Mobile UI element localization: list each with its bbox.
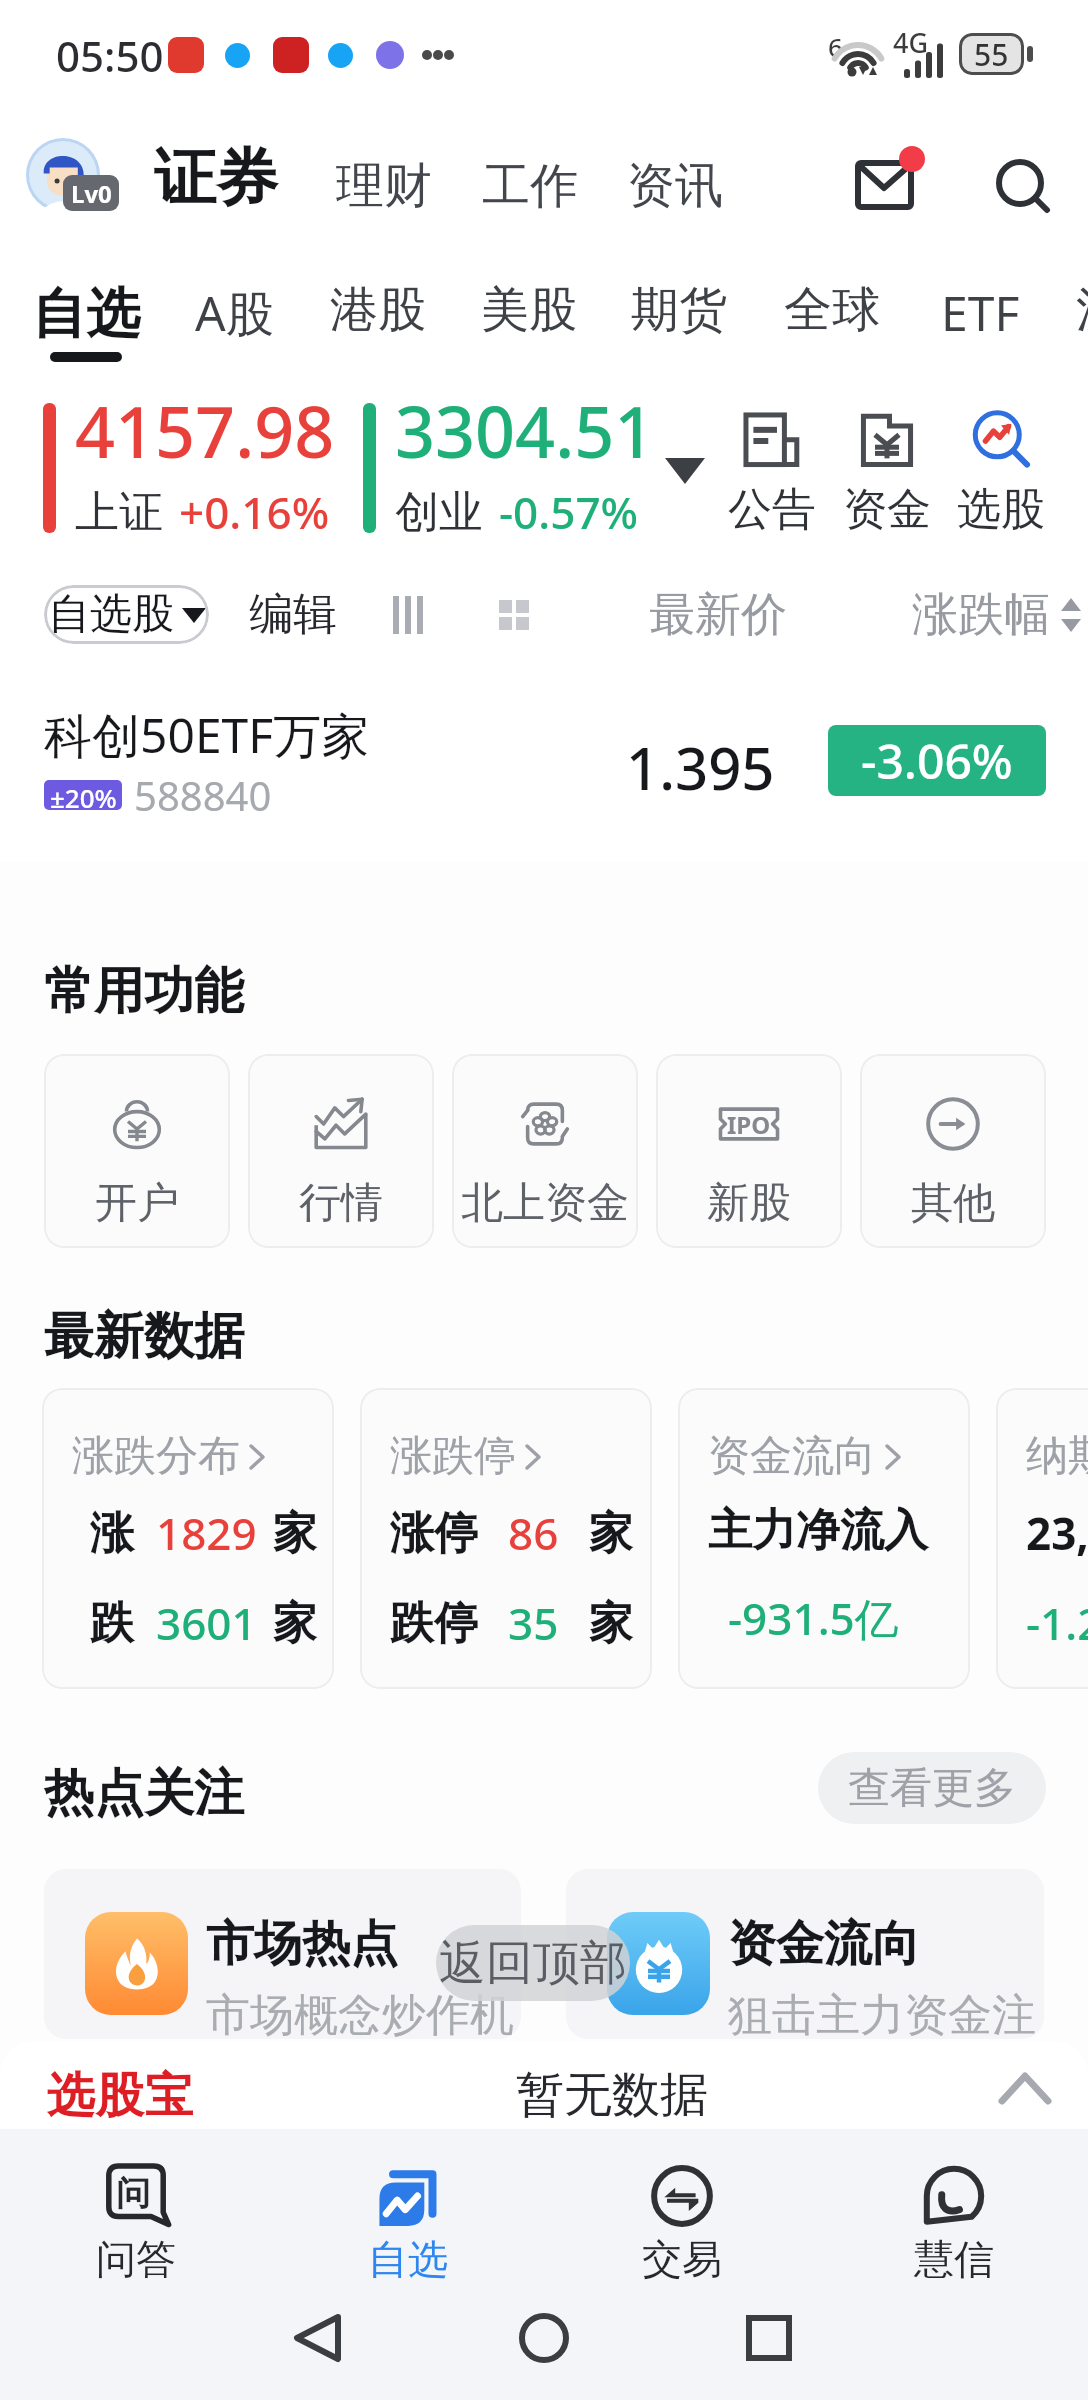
staticText: 23,4 (1026, 1503, 1088, 1563)
button[interactable]: 行情 (248, 1054, 434, 1248)
staticText: -3.06% (861, 728, 1013, 793)
button[interactable]: 港股 (308, 280, 448, 340)
button[interactable]: 返回 (262, 2282, 374, 2394)
button[interactable]: 资讯 (627, 156, 723, 216)
staticText: 跌停 (390, 1596, 478, 1651)
staticText: 创业 (395, 485, 483, 540)
button[interactable]: 全球 (762, 280, 902, 340)
staticText: 常用功能 (44, 960, 244, 1023)
staticText: 开户 (95, 1177, 179, 1230)
staticText: 家 (273, 1506, 317, 1561)
button[interactable]: 问 (46, 2150, 226, 2290)
button[interactable]: 资金流向 (566, 1869, 1044, 2039)
staticText: 最新数据 (44, 1305, 244, 1368)
staticText: 查看更多 (848, 1762, 1016, 1815)
staticText: 6 (828, 29, 843, 64)
staticText: 4157.98 (75, 383, 335, 478)
button[interactable]: 工作 (482, 156, 578, 216)
staticText: 慧信 (914, 2234, 994, 2284)
staticText: 自选股 (48, 588, 174, 641)
button[interactable]: 自选股 (44, 585, 209, 644)
staticText: 编辑 (249, 587, 337, 642)
staticText: 涨停 (390, 1506, 478, 1561)
staticText: 港股 (330, 280, 426, 340)
button[interactable]: 其他 (860, 1054, 1046, 1248)
staticText: 涨跌停 (390, 1430, 516, 1483)
button[interactable]: 自选 (318, 2150, 498, 2290)
staticText: 自选 (32, 280, 140, 348)
button[interactable]: 涨跌幅 (912, 585, 1081, 644)
button[interactable]: A股 (164, 280, 304, 346)
button[interactable]: 涨跌分布 (42, 1388, 334, 1689)
staticText: -0.57% (499, 482, 639, 542)
button[interactable]: 沪 (1030, 280, 1088, 340)
staticText: 狙击主力资金注入 (728, 1988, 1044, 2039)
button[interactable]: IPO (656, 1054, 842, 1248)
button[interactable]: ETF (910, 280, 1050, 345)
staticText: 返回顶部 (439, 1934, 627, 1993)
staticText: 北上资金 (461, 1177, 629, 1230)
button[interactable]: 搜索 (978, 136, 1068, 226)
staticText: 问答 (96, 2234, 176, 2284)
button[interactable]: 网格视图 (476, 585, 552, 644)
staticText: -931.5亿 (728, 1588, 899, 1648)
staticText: 涨跌分布 (72, 1430, 240, 1483)
button[interactable]: 编辑 (243, 585, 343, 644)
staticText: 资金流向 (708, 1430, 876, 1483)
button[interactable]: 涨跌停 (360, 1388, 652, 1689)
staticText: 工作 (482, 156, 578, 216)
button[interactable] (0, 690, 1088, 835)
button[interactable]: 交易 (592, 2150, 772, 2290)
button[interactable]: 查看更多 (818, 1752, 1046, 1824)
button[interactable]: 返回顶部 (436, 1925, 630, 2001)
staticText: 选股宝 (46, 2066, 193, 2126)
staticText: 涨跌幅 (912, 586, 1050, 644)
staticText: 05:50 (56, 27, 164, 84)
staticText: 公告 (728, 482, 816, 537)
staticText: 家 (589, 1506, 633, 1561)
button[interactable]: 主页 (488, 2282, 600, 2394)
staticText: 市场热点 (206, 1914, 398, 1974)
button[interactable]: 选股 (943, 410, 1059, 537)
staticText: 跌 (90, 1596, 134, 1651)
staticText: 1829 (156, 1503, 257, 1563)
button[interactable]: 选股宝 (0, 2041, 1088, 2129)
staticText: 证券 (154, 139, 278, 217)
button[interactable]: 消息 (845, 136, 935, 226)
staticText: 理财 (336, 156, 432, 216)
staticText: 86 (508, 1503, 559, 1563)
staticText: 新股 (707, 1177, 791, 1230)
staticText: 上证 (75, 485, 163, 540)
staticText: 55 (974, 34, 1009, 75)
staticText: 最新价 (649, 586, 787, 644)
staticText: A股 (195, 280, 274, 346)
staticText: 主力净流入 (708, 1503, 928, 1558)
staticText: 资金流向 (728, 1914, 920, 1974)
staticText: 科创50ETF万家 (44, 702, 370, 768)
button[interactable]: 列表视图 (370, 585, 446, 644)
staticText: IPO (727, 1108, 771, 1141)
button[interactable]: 慧信 (864, 2150, 1044, 2290)
button[interactable]: 理财 (336, 156, 432, 216)
button[interactable]: 美股 (459, 280, 599, 340)
button[interactable]: 公告 (714, 410, 830, 537)
staticText: 沪 (1076, 280, 1088, 340)
staticText: 交易 (642, 2234, 722, 2284)
staticText: 纳斯达克 (1026, 1430, 1088, 1483)
staticText: ETF (941, 280, 1020, 345)
button[interactable]: 开户 (44, 1054, 230, 1248)
button[interactable]: 纳斯达克 (996, 1388, 1088, 1689)
staticText: 35 (508, 1593, 559, 1653)
button[interactable]: 市场热点 (44, 1869, 521, 2039)
button[interactable]: 北上资金 (452, 1054, 638, 1248)
button[interactable]: 最近任务 (713, 2282, 825, 2394)
staticText: 588840 (134, 768, 272, 822)
staticText: 涨 (90, 1506, 134, 1561)
staticText: 行情 (299, 1177, 383, 1230)
staticText: +0.16% (179, 482, 330, 542)
staticText: 选股 (957, 482, 1045, 537)
button[interactable]: 资金流向 (678, 1388, 970, 1689)
button[interactable]: 期货 (609, 280, 749, 340)
button[interactable]: 自选 (16, 280, 156, 362)
button[interactable]: 资金 (829, 410, 945, 537)
